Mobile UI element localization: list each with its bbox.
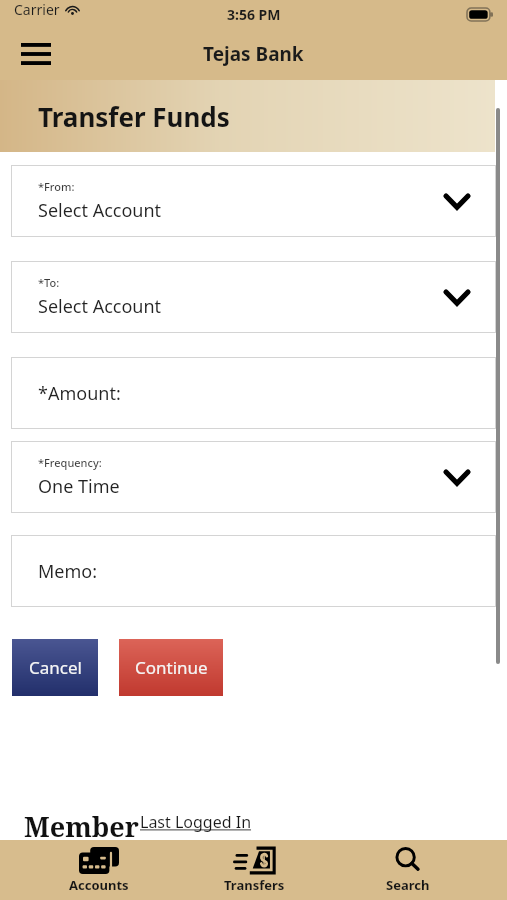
button[interactable]: *To:: [11, 261, 496, 333]
staticText: Search: [386, 876, 430, 894]
button[interactable]: Transfers: [199, 840, 309, 900]
button[interactable]: Menu: [14, 32, 58, 76]
button[interactable]: Continue: [119, 639, 223, 696]
staticText: 3:56 PM: [227, 5, 281, 24]
staticText: *To:: [38, 275, 60, 290]
staticText: *Amount:: [38, 381, 121, 406]
button[interactable]: Last Logged In: [140, 811, 252, 833]
button[interactable]: *From:: [11, 165, 496, 237]
button[interactable]: Cancel: [12, 639, 98, 696]
staticText: Accounts: [69, 876, 129, 894]
staticText: *From:: [38, 179, 75, 194]
staticText: Select Account: [38, 198, 162, 223]
staticText: Transfers: [224, 876, 285, 894]
staticText: Transfer Funds: [38, 99, 230, 134]
staticText: Select Account: [38, 294, 162, 319]
staticText: One Time: [38, 474, 120, 499]
button[interactable]: *Amount:: [11, 357, 496, 429]
staticText: Member: [24, 808, 139, 845]
staticText: Carrier: [14, 0, 60, 19]
button[interactable]: Search: [353, 840, 463, 900]
staticText: *Frequency:: [38, 455, 102, 470]
staticText: Continue: [135, 656, 208, 679]
button[interactable]: *Frequency:: [11, 441, 496, 513]
staticText: Cancel: [29, 656, 82, 679]
staticText: Tejas Bank: [203, 41, 304, 67]
button[interactable]: Memo:: [11, 535, 496, 607]
button[interactable]: Accounts: [44, 840, 154, 900]
staticText: Memo:: [38, 559, 98, 584]
